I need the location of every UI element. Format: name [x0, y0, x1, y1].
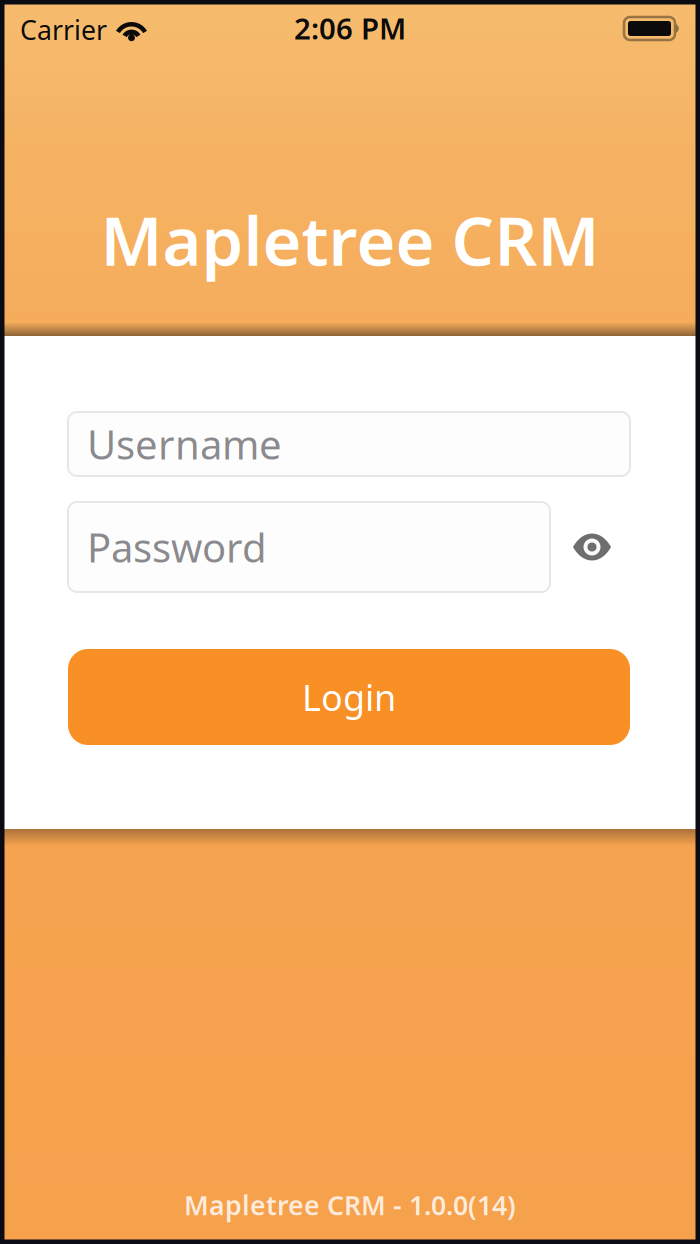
staticText: Login — [302, 673, 396, 721]
staticText: Username — [87, 417, 282, 470]
staticText: Mapletree CRM - 1.0.0(14) — [184, 1187, 516, 1223]
button[interactable]: Password — [68, 502, 550, 592]
staticText: Mapletree CRM — [100, 196, 599, 284]
staticText: Password — [87, 520, 267, 573]
staticText: 2:06 PM — [294, 8, 406, 47]
button[interactable]: Username — [68, 412, 630, 476]
button[interactable]: Login — [68, 649, 630, 745]
staticText: Carrier — [20, 12, 107, 47]
button[interactable]: Show password — [562, 517, 622, 577]
